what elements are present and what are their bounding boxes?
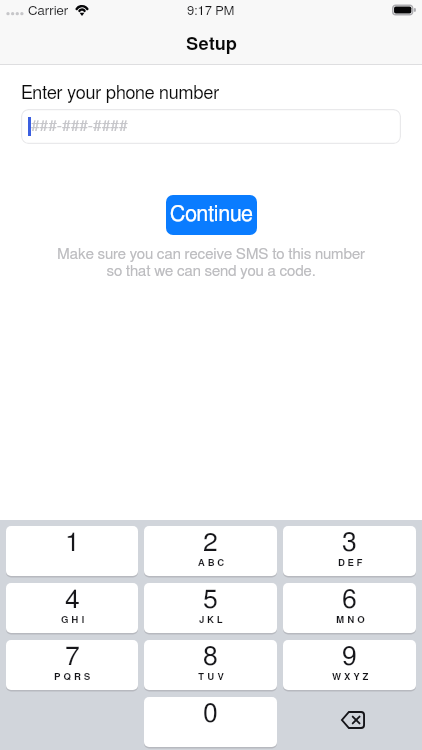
staticText: GHI: [61, 615, 88, 625]
staticText: WXYZ: [332, 672, 372, 682]
staticText: Make sure you can receive SMS to this nu…: [0, 247, 422, 279]
staticText: 9:17 PM: [187, 5, 235, 18]
button[interactable]: 9: [283, 640, 416, 690]
staticText: Setup: [186, 36, 237, 54]
staticText: JKL: [199, 615, 226, 625]
staticText: 2: [203, 530, 218, 557]
staticText: 6: [342, 587, 357, 614]
staticText: TUV: [198, 672, 227, 682]
button[interactable]: 3: [283, 526, 416, 576]
staticText: MNO: [336, 615, 368, 625]
staticText: 5: [203, 587, 218, 614]
staticText: DEF: [338, 558, 366, 568]
button[interactable]: 2: [144, 526, 277, 576]
button[interactable]: 8: [144, 640, 277, 690]
staticText: 3: [342, 530, 357, 557]
staticText: PQRS: [54, 672, 94, 682]
staticText: ABC: [198, 558, 228, 568]
button[interactable]: 6: [283, 583, 416, 633]
staticText: 8: [203, 644, 218, 671]
staticText: Continue: [170, 204, 253, 226]
staticText: 9: [342, 644, 357, 671]
staticText: Carrier: [28, 4, 69, 18]
staticText: 0: [203, 701, 218, 728]
staticText: 1: [65, 530, 80, 557]
button[interactable]: 5: [144, 583, 277, 633]
button[interactable]: ###-###-####: [21, 109, 401, 144]
staticText: Enter your phone number: [21, 84, 220, 102]
button[interactable]: Delete: [283, 697, 416, 747]
button[interactable]: 0: [144, 697, 277, 747]
button[interactable]: 1: [6, 526, 138, 576]
staticText: 7: [65, 644, 80, 671]
button[interactable]: 7: [6, 640, 138, 690]
staticText: ###-###-####: [31, 119, 128, 135]
staticText: 4: [65, 587, 80, 614]
button[interactable]: 4: [6, 583, 138, 633]
button[interactable]: Continue: [166, 195, 257, 235]
